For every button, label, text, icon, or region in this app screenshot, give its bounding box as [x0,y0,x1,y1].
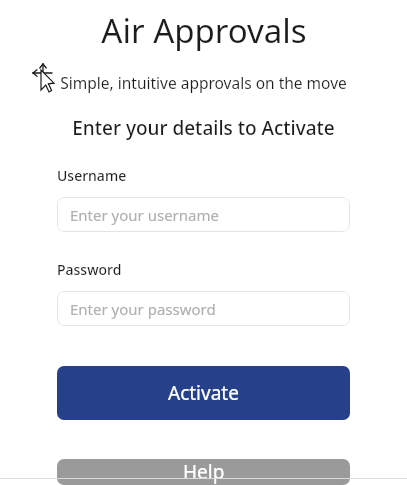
other: Pointer [32,62,58,94]
staticText: Air Approvals [101,8,307,53]
staticText: Username [57,166,127,185]
button[interactable]: Activate [57,366,350,420]
staticText: Help [183,459,225,485]
staticText: Password [57,260,122,279]
button[interactable]: Enter your username [57,197,350,232]
button[interactable]: Enter your password [57,291,350,326]
staticText: Simple, intuitive approvals on the move [60,72,347,93]
staticText: Enter your username [70,205,219,225]
staticText: Activate [168,380,239,406]
staticText: Enter your password [70,299,216,319]
button[interactable]: Help [57,459,350,485]
staticText: Enter your details to Activate [72,115,335,141]
